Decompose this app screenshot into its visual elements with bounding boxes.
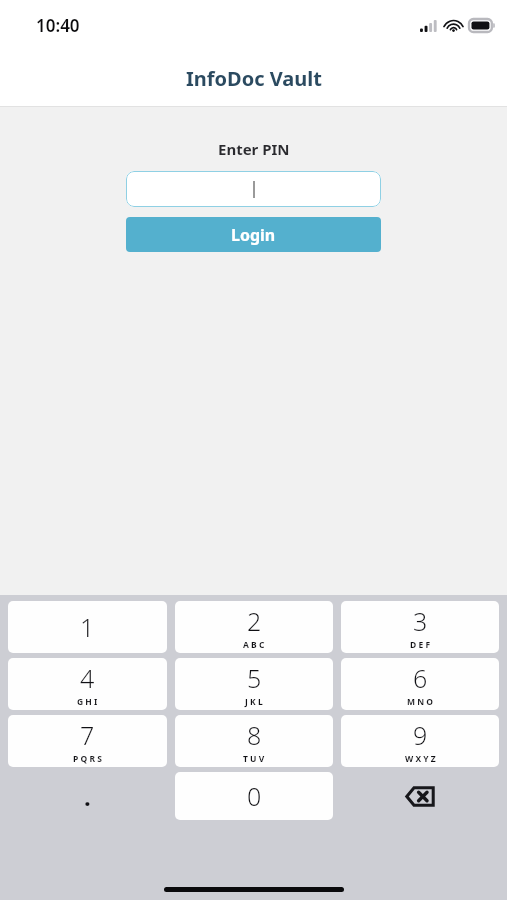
button[interactable]: 4 xyxy=(8,658,167,710)
staticText: 10:40 xyxy=(36,14,80,37)
staticText: 5 xyxy=(247,661,262,695)
staticText: 1 xyxy=(80,610,95,644)
staticText: 2 xyxy=(247,604,262,638)
button[interactable]: 3 xyxy=(341,601,499,653)
staticText: . xyxy=(84,780,91,813)
button[interactable]: 0 xyxy=(175,772,333,820)
staticText: 3 xyxy=(413,604,428,638)
button[interactable]: Login xyxy=(126,217,381,252)
staticText: InfoDoc Vault xyxy=(186,65,322,92)
staticText: 4 xyxy=(80,661,95,695)
button[interactable]: 2 xyxy=(175,601,333,653)
staticText: Enter PIN xyxy=(218,139,290,159)
button[interactable]: . xyxy=(8,772,167,820)
button[interactable]: 1 xyxy=(8,601,167,653)
button[interactable]: 6 xyxy=(341,658,499,710)
button[interactable]: 7 xyxy=(8,715,167,767)
staticText: M N O xyxy=(407,696,434,708)
staticText: J K L xyxy=(245,696,263,708)
staticText: D E F xyxy=(410,639,431,651)
button[interactable]: 9 xyxy=(341,715,499,767)
staticText: 0 xyxy=(247,779,262,813)
staticText: 8 xyxy=(247,718,262,752)
staticText: G H I xyxy=(77,696,98,708)
staticText: 9 xyxy=(413,718,428,752)
staticText: W X Y Z xyxy=(405,753,436,765)
staticText: A B C xyxy=(243,639,265,651)
staticText: 7 xyxy=(80,718,95,752)
button[interactable]: 5 xyxy=(175,658,333,710)
button[interactable]: 8 xyxy=(175,715,333,767)
staticText: 6 xyxy=(413,661,428,695)
staticText: T U V xyxy=(243,753,265,765)
staticText: Login xyxy=(231,224,276,246)
button[interactable]: Backspace xyxy=(341,772,499,820)
button[interactable] xyxy=(126,171,381,207)
staticText: P Q R S xyxy=(73,753,102,765)
